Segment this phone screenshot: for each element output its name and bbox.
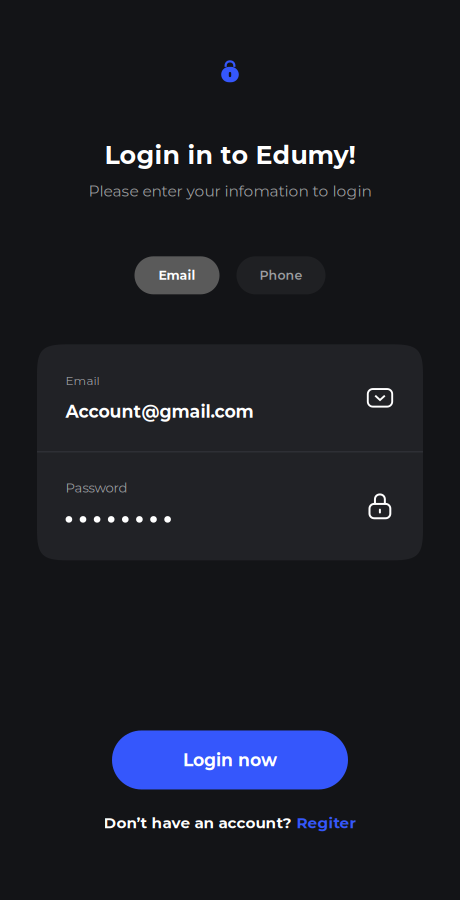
staticText: Please enter your infomation to login (88, 181, 371, 200)
staticText: Email (158, 268, 195, 283)
staticText: Regiter (296, 813, 356, 832)
staticText: Don’t have an account? (103, 813, 291, 832)
staticText: Login now (183, 749, 277, 770)
button[interactable]: Phone (236, 256, 325, 294)
button[interactable]: Show password (369, 494, 390, 518)
staticText: Phone (259, 268, 302, 283)
button[interactable]: Don’t have an account? (103, 813, 356, 832)
staticText: Account@gmail.com (66, 401, 254, 422)
button[interactable]: Login now (112, 730, 348, 789)
button[interactable]: Choose saved email (368, 389, 392, 407)
staticText: Login in to Edumy! (104, 140, 355, 170)
staticText: Email (66, 373, 100, 388)
button[interactable]: Email (134, 256, 219, 294)
staticText: Password (66, 480, 128, 496)
